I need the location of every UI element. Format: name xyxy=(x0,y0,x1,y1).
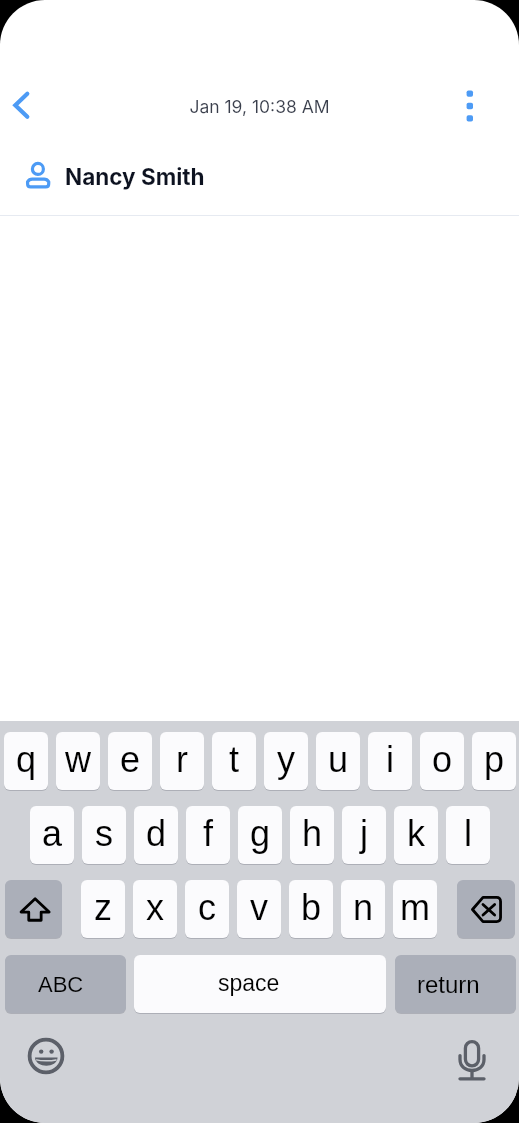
staticText: t xyxy=(229,739,240,779)
staticText: x xyxy=(146,887,164,927)
button[interactable]: p xyxy=(472,732,516,790)
button[interactable]: Dictate xyxy=(449,1038,495,1084)
button[interactable]: a xyxy=(30,806,74,864)
staticText: w xyxy=(65,739,91,779)
staticText: l xyxy=(464,813,472,853)
staticText: space xyxy=(218,970,280,996)
staticText: b xyxy=(301,887,322,927)
button[interactable]: l xyxy=(446,806,490,864)
button[interactable]: g xyxy=(238,806,282,864)
staticText: m xyxy=(400,887,430,927)
button[interactable]: o xyxy=(420,732,464,790)
button[interactable]: Emoji xyxy=(23,1033,69,1079)
staticText: o xyxy=(432,739,453,779)
button[interactable]: h xyxy=(290,806,334,864)
button[interactable]: v xyxy=(237,880,281,938)
button[interactable]: c xyxy=(185,880,229,938)
button[interactable]: d xyxy=(134,806,178,864)
staticText: c xyxy=(198,887,216,927)
button[interactable]: q xyxy=(4,732,48,790)
staticText: return xyxy=(417,971,480,998)
button[interactable] xyxy=(5,880,62,938)
staticText: Nancy Smith xyxy=(65,163,205,190)
staticText: i xyxy=(386,739,394,779)
staticText: h xyxy=(302,813,323,853)
staticText: j xyxy=(360,813,368,853)
button[interactable]: n xyxy=(341,880,385,938)
staticText: q xyxy=(16,739,37,779)
staticText: k xyxy=(407,813,425,853)
button[interactable]: r xyxy=(160,732,204,790)
button[interactable]: More options xyxy=(442,78,496,132)
button[interactable]: Back xyxy=(0,78,54,132)
button[interactable]: e xyxy=(108,732,152,790)
button[interactable]: k xyxy=(394,806,438,864)
button[interactable]: f xyxy=(186,806,230,864)
button[interactable]: w xyxy=(56,732,100,790)
staticText: y xyxy=(277,739,295,779)
button[interactable]: b xyxy=(289,880,333,938)
button[interactable]: z xyxy=(81,880,125,938)
button[interactable]: t xyxy=(212,732,256,790)
staticText: g xyxy=(250,813,271,853)
staticText: p xyxy=(484,739,505,779)
staticText: e xyxy=(120,739,141,779)
staticText: r xyxy=(176,739,188,779)
button[interactable] xyxy=(457,880,515,938)
button[interactable]: u xyxy=(316,732,360,790)
button[interactable]: Nancy Smith xyxy=(0,145,519,215)
staticText: n xyxy=(353,887,374,927)
button[interactable]: space xyxy=(134,955,386,1013)
button[interactable]: y xyxy=(264,732,308,790)
staticText: ABC xyxy=(38,972,84,997)
staticText: a xyxy=(42,813,63,853)
staticText: Jan 19, 10:38 AM xyxy=(189,96,330,117)
button[interactable]: m xyxy=(393,880,437,938)
button[interactable]: i xyxy=(368,732,412,790)
staticText: z xyxy=(94,887,112,927)
button[interactable]: j xyxy=(342,806,386,864)
button[interactable]: return xyxy=(395,955,516,1013)
staticText: u xyxy=(328,739,349,779)
staticText: v xyxy=(250,887,268,927)
button[interactable]: s xyxy=(82,806,126,864)
staticText: d xyxy=(146,813,167,853)
staticText: s xyxy=(95,813,113,853)
staticText: f xyxy=(203,813,214,853)
button[interactable]: ABC xyxy=(5,955,126,1013)
button[interactable]: x xyxy=(133,880,177,938)
